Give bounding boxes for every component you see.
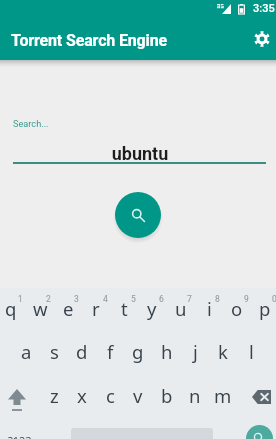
staticText: h <box>161 339 173 364</box>
staticText: p <box>259 296 271 321</box>
button[interactable]: b <box>153 373 181 417</box>
staticText: q <box>5 296 17 321</box>
button[interactable]: Search <box>246 425 273 439</box>
button[interactable]: y <box>138 286 166 330</box>
button[interactable]: ?123 <box>0 424 40 439</box>
button[interactable]: f <box>96 329 124 373</box>
staticText: r <box>92 296 100 321</box>
button[interactable]: v <box>124 373 152 417</box>
staticText: d <box>76 339 88 364</box>
staticText: t <box>121 296 128 321</box>
staticText: w <box>33 296 48 321</box>
button[interactable]: Settings <box>247 24 276 54</box>
button[interactable]: s <box>40 329 68 373</box>
staticText: 8 <box>215 294 220 304</box>
button[interactable]: z <box>40 373 68 417</box>
button[interactable]: j <box>181 329 209 373</box>
staticText: u <box>175 296 187 321</box>
staticText: 6 <box>159 294 164 304</box>
staticText: s <box>50 339 59 364</box>
button[interactable]: n <box>181 373 209 417</box>
staticText: 0 <box>272 294 276 304</box>
button[interactable]: u <box>167 286 195 330</box>
staticText: z <box>50 383 59 408</box>
button[interactable]: g <box>124 329 152 373</box>
button[interactable]: h <box>153 329 181 373</box>
button[interactable]: i <box>195 286 223 330</box>
staticText: m <box>214 383 232 408</box>
button[interactable]: m <box>209 373 237 417</box>
staticText: b <box>161 383 173 408</box>
staticText: g <box>132 339 144 364</box>
staticText: v <box>133 383 143 408</box>
staticText: e <box>63 296 74 321</box>
staticText: 3 <box>74 294 79 304</box>
button[interactable]: Backspace <box>245 383 276 411</box>
button[interactable]: x <box>68 373 96 417</box>
staticText: o <box>231 296 243 321</box>
button[interactable]: e <box>54 286 82 330</box>
staticText: 4 <box>103 294 108 304</box>
button[interactable]: d <box>68 329 96 373</box>
staticText: 1 <box>18 294 23 304</box>
staticText: 9 <box>244 294 249 304</box>
staticText: f <box>107 339 114 364</box>
staticText: Torrent Search Engine <box>11 31 168 50</box>
staticText: c <box>106 383 115 408</box>
staticText: ?123 <box>8 433 32 439</box>
staticText: 2 <box>46 294 51 304</box>
staticText: y <box>147 296 157 321</box>
button[interactable]: p <box>251 286 276 330</box>
staticText: 7 <box>187 294 192 304</box>
button[interactable]: w <box>26 286 54 330</box>
staticText: ubuntu <box>2 143 276 164</box>
button[interactable]: l <box>237 329 265 373</box>
button[interactable]: Shift <box>0 381 34 419</box>
button[interactable]: c <box>96 373 124 417</box>
staticText: x <box>77 383 87 408</box>
staticText: k <box>218 339 228 364</box>
staticText: 5 <box>131 294 136 304</box>
staticText: n <box>189 383 201 408</box>
button[interactable]: t <box>110 286 138 330</box>
button[interactable]: Search <box>115 192 161 238</box>
button[interactable]: r <box>82 286 110 330</box>
button[interactable]: o <box>223 286 251 330</box>
staticText: l <box>249 339 254 364</box>
button[interactable]: q <box>0 286 25 330</box>
button[interactable]: k <box>209 329 237 373</box>
button[interactable]: a <box>12 329 40 373</box>
staticText: Search... <box>13 118 49 129</box>
staticText: 3:35 <box>253 2 275 15</box>
staticText: i <box>207 296 212 321</box>
staticText: a <box>21 339 32 364</box>
staticText: j <box>193 339 198 364</box>
